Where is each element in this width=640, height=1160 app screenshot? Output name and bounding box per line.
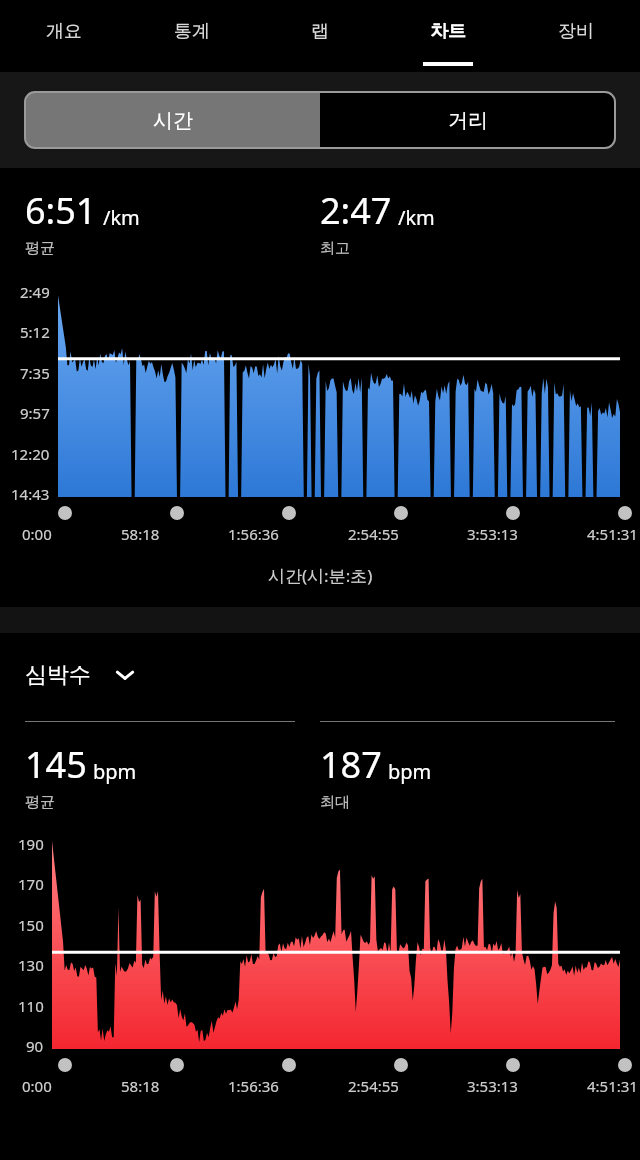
staticText: 3:53:13 — [467, 1076, 518, 1096]
button[interactable]: 장비 — [512, 0, 640, 72]
staticText: 랩 — [311, 20, 329, 43]
staticText: 14:43 — [11, 484, 50, 504]
button[interactable]: 거리 — [320, 92, 615, 148]
staticText: 90 — [26, 1036, 44, 1056]
staticText: 최대 — [320, 793, 350, 812]
button[interactable]: 랩 — [256, 0, 384, 72]
staticText: 거리 — [448, 108, 488, 133]
staticText: 4:51:31 — [587, 524, 638, 544]
staticText: 58:18 — [121, 1076, 160, 1096]
staticText: 190 — [18, 834, 44, 854]
staticText: 최고 — [320, 239, 350, 258]
staticText: 2:54:55 — [348, 1076, 399, 1096]
staticText: 0:00 — [22, 1076, 52, 1096]
staticText: 130 — [18, 955, 44, 975]
staticText: 심박수 — [25, 661, 91, 689]
staticText: 장비 — [558, 20, 594, 43]
staticText: 187 — [320, 740, 382, 789]
staticText: 150 — [18, 915, 44, 935]
button[interactable]: 통계 — [128, 0, 256, 72]
staticText: 개요 — [46, 20, 82, 43]
staticText: 통계 — [174, 20, 210, 43]
button[interactable]: 심박수 — [25, 661, 615, 689]
staticText: 5:12 — [20, 322, 50, 342]
staticText: 1:56:36 — [228, 524, 279, 544]
staticText: 170 — [18, 874, 44, 894]
button[interactable]: 개요 — [0, 0, 128, 72]
staticText: bpm — [388, 758, 432, 785]
staticText: 2:49 — [20, 282, 50, 302]
staticText: 4:51:31 — [587, 1076, 638, 1096]
staticText: /km — [103, 204, 140, 231]
staticText: 2:54:55 — [348, 524, 399, 544]
staticText: 0:00 — [22, 524, 52, 544]
staticText: 110 — [18, 996, 44, 1016]
other: Expand heart rate — [113, 663, 137, 687]
staticText: /km — [398, 204, 435, 231]
staticText: 시간(시:분:초) — [268, 564, 373, 587]
staticText: bpm — [93, 758, 137, 785]
staticText: 평균 — [25, 239, 55, 258]
staticText: 145 — [25, 740, 87, 789]
staticText: 평균 — [25, 793, 55, 812]
staticText: 7:35 — [20, 363, 50, 383]
button[interactable]: 차트 — [384, 0, 512, 72]
staticText: 시간 — [153, 108, 193, 133]
staticText: 12:20 — [11, 444, 50, 464]
button[interactable]: 시간 — [25, 92, 320, 148]
staticText: 3:53:13 — [467, 524, 518, 544]
staticText: 1:56:36 — [228, 1076, 279, 1096]
staticText: 9:57 — [20, 403, 50, 423]
staticText: 차트 — [430, 20, 466, 43]
staticText: 6:51 — [25, 186, 97, 235]
staticText: 2:47 — [320, 186, 392, 235]
staticText: 58:18 — [121, 524, 160, 544]
